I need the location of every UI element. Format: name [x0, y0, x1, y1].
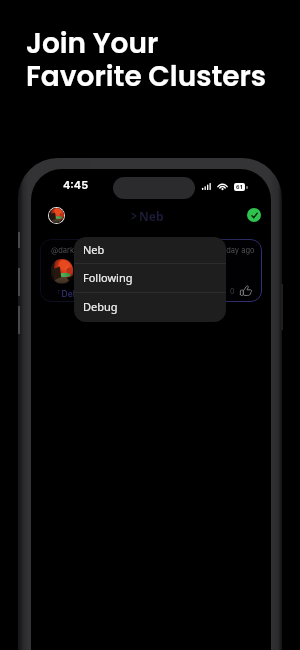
staticText: Neb — [139, 208, 164, 224]
staticText: @darkblue — [51, 246, 90, 255]
staticText: 4:45 — [63, 178, 89, 191]
button[interactable]: @darkblue — [40, 239, 262, 302]
staticText: Following — [83, 270, 133, 285]
staticText: Neb — [83, 242, 105, 257]
button[interactable]: Verified — [247, 208, 261, 222]
staticText: 「Debug」 — [53, 289, 97, 300]
button[interactable]: Following — [74, 264, 226, 292]
staticText: 1 day ago — [221, 246, 255, 255]
staticText: 61 — [236, 183, 243, 191]
staticText: 0 — [230, 287, 235, 295]
button[interactable]: Debug — [74, 293, 226, 322]
staticText: Debug — [83, 299, 118, 314]
button[interactable]: Profile — [48, 207, 65, 224]
button[interactable]: Like — [230, 285, 252, 296]
button[interactable]: Neb — [74, 237, 226, 263]
button[interactable]: Neb — [131, 208, 164, 224]
staticText: Join Your Favorite Clusters — [26, 24, 267, 96]
